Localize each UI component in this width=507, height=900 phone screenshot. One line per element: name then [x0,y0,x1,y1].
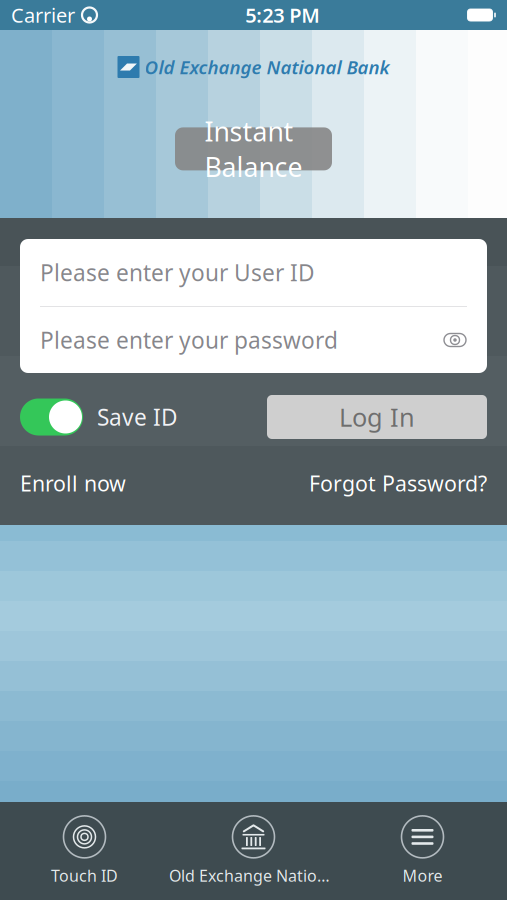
button[interactable]: Touch ID [0,808,169,894]
button[interactable]: Save ID [20,398,178,435]
staticText: Log In [339,400,415,434]
staticText: Instant Balance [204,113,302,184]
button[interactable]: Enroll now [20,469,126,497]
staticText: 5:23 PM [245,2,320,28]
button[interactable]: Instant Balance [175,127,332,170]
button[interactable]: Log In [267,395,487,439]
staticText: Old Exchange National B... [169,865,338,886]
button[interactable]: Please enter your password [20,307,487,373]
button[interactable]: More [338,808,507,894]
staticText: Please enter your User ID [40,257,315,287]
staticText: Please enter your password [40,325,338,355]
button[interactable]: Old Exchange National B... [169,808,338,894]
button[interactable]: Please enter your User ID [20,239,487,306]
staticText: More [402,865,442,886]
staticText: Forgot Password? [309,469,487,497]
staticText: Save ID [97,402,178,432]
staticText: Enroll now [20,469,126,497]
staticText: Carrier [11,2,75,28]
staticText: Old Exchange National Bank [144,55,389,79]
staticText: Touch ID [51,865,118,886]
button[interactable]: Forgot Password? [309,469,487,497]
